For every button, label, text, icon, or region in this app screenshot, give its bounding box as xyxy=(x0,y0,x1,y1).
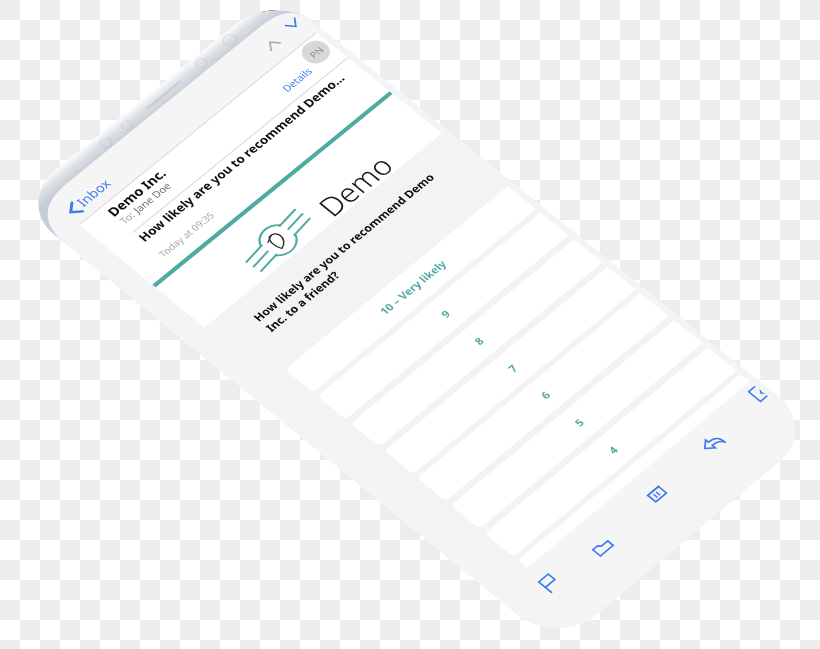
button[interactable]: 2 xyxy=(551,401,803,612)
button[interactable]: Inbox xyxy=(62,175,115,218)
staticText: 7 xyxy=(504,361,521,375)
staticText: Inbox xyxy=(73,175,115,210)
staticText: 4 xyxy=(604,443,621,457)
button[interactable]: 7 xyxy=(384,267,636,474)
staticText: 9 xyxy=(437,307,454,321)
staticText: Demo Inc. xyxy=(103,165,171,220)
staticText: To: xyxy=(116,207,141,227)
staticText: How likely are you to recommend Demo Inc… xyxy=(250,170,451,334)
staticText: 6 xyxy=(537,388,554,402)
button[interactable]: Next message xyxy=(283,16,303,32)
button[interactable]: 5 xyxy=(451,320,702,529)
button[interactable]: 9 xyxy=(317,212,569,419)
button[interactable]: 6 xyxy=(417,293,669,501)
button[interactable]: 3 xyxy=(517,374,769,584)
staticText: Demo xyxy=(309,147,402,224)
staticText: Jane Doe xyxy=(130,180,174,216)
staticText: 9:41 xyxy=(59,156,90,181)
button[interactable]: Previous message xyxy=(263,36,283,52)
button[interactable]: PN xyxy=(296,36,336,68)
button[interactable]: 10 – Very likely xyxy=(284,186,536,393)
button[interactable]: Flag xyxy=(518,558,579,608)
button[interactable]: Reply xyxy=(681,418,742,468)
button[interactable]: Compose xyxy=(730,378,776,416)
button[interactable]: 8 xyxy=(351,239,602,447)
staticText: PN xyxy=(306,43,327,60)
button[interactable]: Move to folder xyxy=(572,522,633,572)
staticText: Today at 09:35 xyxy=(155,209,217,259)
button[interactable]: Delete xyxy=(626,468,687,518)
staticText: 5 xyxy=(571,415,587,429)
button[interactable]: 4 xyxy=(484,347,736,557)
staticText: 8 xyxy=(470,334,487,348)
staticText: 10 – Very likely xyxy=(376,257,450,318)
staticText: How likely are you to recommend Demo... xyxy=(135,71,349,245)
button[interactable]: Details xyxy=(279,65,316,95)
